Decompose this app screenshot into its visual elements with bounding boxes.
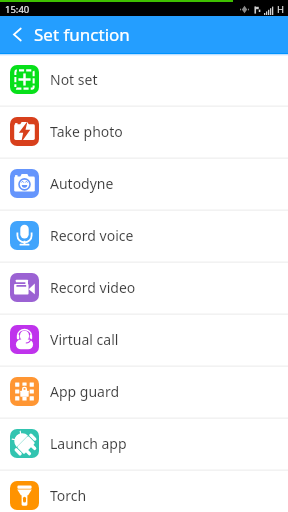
staticText: Take photo [50,122,123,141]
staticText: Torch [50,486,87,505]
button[interactable]: Autodyne [0,158,288,210]
button[interactable]: App guard [0,366,288,418]
staticText: Virtual call [50,330,119,349]
staticText: Launch app [50,434,127,453]
button[interactable]: Back [0,16,34,53]
staticText: H [277,3,285,16]
staticText: Autodyne [50,174,114,193]
staticText: 15:40 [5,3,30,16]
button[interactable]: Record voice [0,210,288,262]
staticText: App guard [50,382,120,401]
button[interactable]: Record video [0,262,288,314]
button[interactable]: Launch app [0,418,288,470]
button[interactable]: Not set [0,54,288,106]
staticText: Record voice [50,226,134,245]
staticText: Set function [34,23,130,46]
button[interactable]: Torch [0,470,288,512]
button[interactable]: Virtual call [0,314,288,366]
staticText: Record video [50,278,136,297]
button[interactable]: Take photo [0,106,288,158]
staticText: Not set [50,70,98,89]
